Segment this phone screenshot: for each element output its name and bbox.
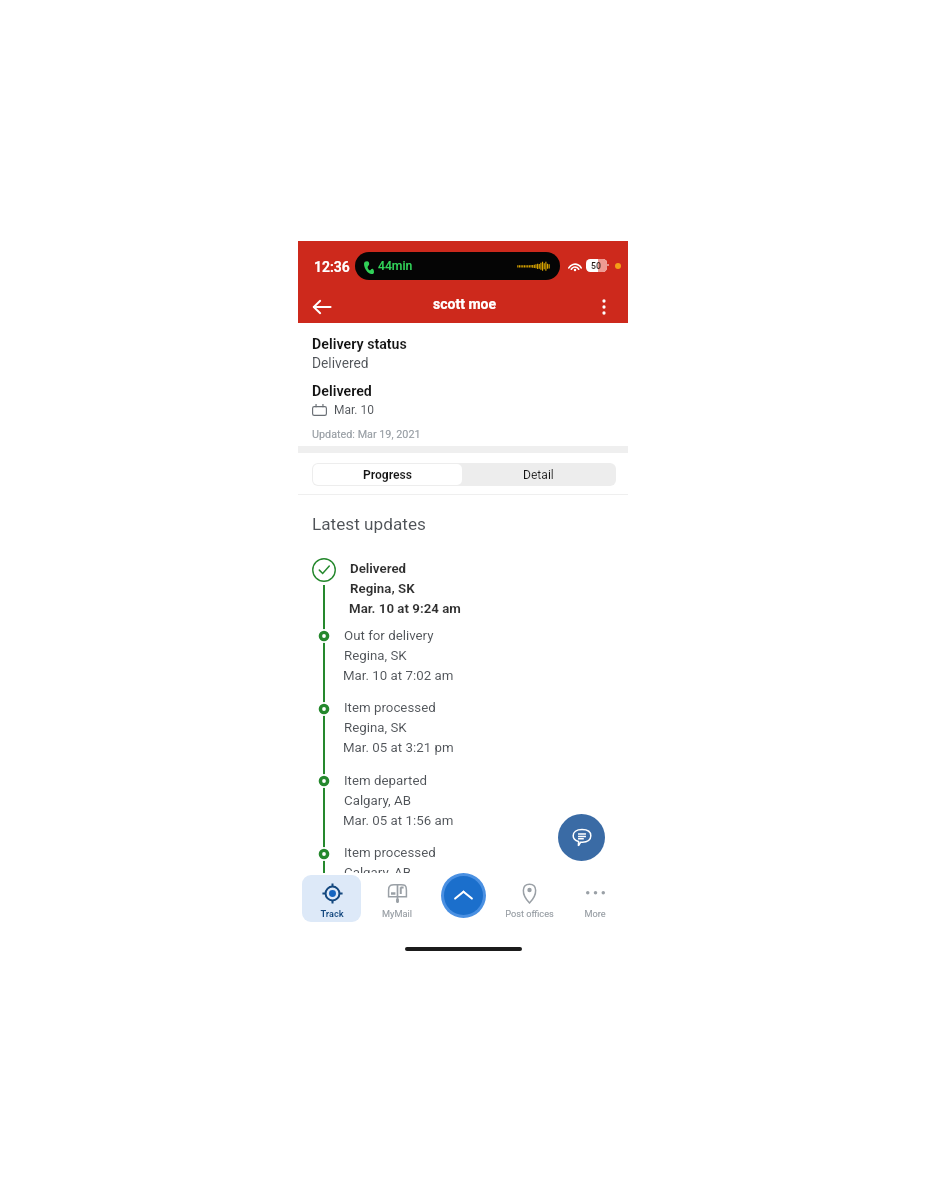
staticText: 12:36	[314, 259, 350, 275]
staticText: Detail	[523, 468, 554, 482]
staticText: 44min	[378, 259, 413, 273]
button[interactable]: Detail	[463, 464, 614, 485]
staticText: Track	[320, 908, 344, 919]
staticText: 50	[591, 261, 602, 271]
staticText: Item departed	[344, 773, 427, 789]
staticText: More	[584, 908, 606, 919]
staticText: Delivery status	[312, 336, 407, 353]
button[interactable]: Progress	[313, 464, 462, 485]
button[interactable]: Chat	[558, 814, 605, 861]
staticText: scott moe	[433, 296, 496, 312]
staticText: Delivered	[312, 383, 372, 400]
staticText: Calgary, AB	[344, 793, 411, 809]
button[interactable]: MyMail	[365, 875, 429, 922]
button[interactable]: More options	[586, 289, 622, 325]
staticText: Latest updates	[312, 514, 426, 534]
staticText: Mar. 05 at 1:56 am	[343, 813, 454, 829]
staticText: Regina, SK	[344, 720, 407, 736]
staticText: Mar. 10	[334, 403, 374, 417]
staticText: Post offices	[505, 908, 554, 919]
staticText: Mar. 10 at 9:24 am	[349, 601, 461, 617]
staticText: Calgary, AB	[344, 865, 411, 881]
staticText: Progress	[363, 468, 413, 482]
button[interactable]: More	[563, 875, 627, 922]
staticText: Regina, SK	[350, 581, 415, 597]
staticText: Delivered	[350, 561, 407, 577]
staticText: Out for delivery	[344, 628, 434, 644]
staticText: MyMail	[382, 908, 412, 919]
button[interactable]: Track	[302, 875, 361, 922]
staticText: Mar. 10 at 7:02 am	[343, 668, 454, 684]
staticText: Delivered	[312, 355, 369, 371]
button[interactable]: Post offices	[497, 875, 561, 922]
staticText: Item processed	[344, 845, 436, 861]
staticText: Regina, SK	[344, 648, 407, 664]
staticText: Updated: Mar 19, 2021	[312, 428, 421, 441]
button[interactable]: Expand	[444, 876, 483, 915]
staticText: Item processed	[344, 700, 436, 716]
button[interactable]: Back	[304, 289, 340, 325]
staticText: Mar. 05 at 3:21 pm	[343, 740, 454, 756]
